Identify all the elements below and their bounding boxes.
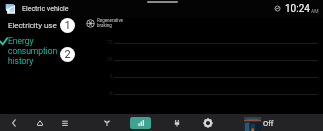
staticText: AM <box>311 8 319 14</box>
button[interactable]: Settings <box>197 114 219 131</box>
staticText: braking <box>97 23 112 28</box>
staticText: 2 <box>64 48 71 61</box>
staticText: Regenerative <box>97 18 123 23</box>
button[interactable]: 1 <box>60 18 75 33</box>
staticText: 5 <box>109 73 112 79</box>
button[interactable]: Eco mode <box>96 114 118 131</box>
staticText: 15 <box>106 39 112 45</box>
staticText: Energy <box>8 36 34 46</box>
button[interactable]: Home <box>29 114 51 131</box>
staticText: Off <box>263 119 274 128</box>
button[interactable]: 2 <box>60 47 75 62</box>
button[interactable]: Charging <box>166 114 188 131</box>
staticText: Electric vehicle <box>22 5 69 13</box>
button[interactable]: Recents <box>54 114 76 131</box>
staticText: Electricity use <box>8 21 57 30</box>
staticText: 10:24 <box>285 3 310 15</box>
button[interactable]: Energy usage <box>130 117 151 129</box>
button[interactable]: Camera preview <box>244 117 261 131</box>
staticText: 0 <box>109 90 112 96</box>
staticText: consumption <box>8 46 58 56</box>
staticText: 1 <box>64 19 71 32</box>
button[interactable]: Window handle <box>147 1 178 3</box>
button[interactable]: Back <box>3 114 25 131</box>
staticText: 10 <box>106 56 112 62</box>
staticText: history <box>8 56 34 66</box>
